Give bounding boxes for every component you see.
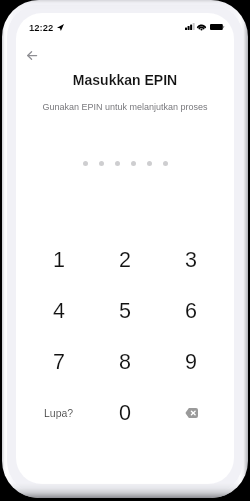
- staticText: 3: [185, 248, 197, 272]
- button[interactable]: 5: [92, 285, 158, 336]
- staticText: 5: [119, 299, 131, 323]
- button[interactable]: Backspace: [158, 387, 224, 438]
- button[interactable]: 2: [92, 234, 158, 285]
- staticText: 4: [53, 299, 65, 323]
- button[interactable]: 8: [92, 336, 158, 387]
- staticText: 7: [53, 350, 65, 374]
- staticText: 0: [119, 401, 131, 425]
- button[interactable]: Back: [17, 41, 46, 70]
- button[interactable]: 7: [26, 336, 92, 387]
- button[interactable]: 6: [158, 285, 224, 336]
- staticText: Masukkan EPIN: [16, 72, 234, 88]
- button[interactable]: 9: [158, 336, 224, 387]
- button[interactable]: 0: [92, 387, 158, 438]
- staticText: 12:22: [29, 22, 54, 33]
- staticText: 1: [53, 248, 65, 272]
- staticText: 9: [185, 350, 197, 374]
- staticText: 2: [119, 248, 131, 272]
- button[interactable]: 4: [26, 285, 92, 336]
- staticText: Gunakan EPIN untuk melanjutkan proses: [16, 102, 234, 112]
- staticText: Lupa?: [44, 407, 74, 419]
- button[interactable]: 3: [158, 234, 224, 285]
- button[interactable]: Lupa?: [26, 387, 92, 438]
- button[interactable]: 1: [26, 234, 92, 285]
- staticText: 6: [185, 299, 197, 323]
- staticText: 8: [119, 350, 131, 374]
